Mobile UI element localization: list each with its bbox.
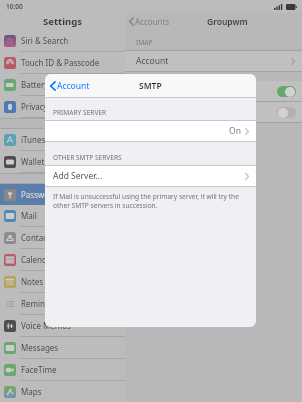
staticText: Battery [21, 79, 49, 90]
staticText: Contacts [21, 232, 54, 243]
button[interactable]: Add Server... [45, 166, 256, 186]
staticText: SMTP [139, 80, 162, 92]
staticText: Passwords [21, 189, 62, 200]
staticText: Messages [21, 342, 59, 353]
staticText: Maps [21, 386, 42, 397]
staticText: Groupwm [207, 16, 248, 28]
staticText: Voice Memos [21, 320, 71, 331]
staticText: Siri & Search [21, 35, 69, 46]
staticText: Touch ID & Passcode [21, 57, 100, 68]
staticText: Account [136, 55, 169, 67]
button[interactable]: Touch ID & Passcode [0, 52, 125, 73]
button[interactable]: iTunes & App Store [0, 129, 125, 150]
button[interactable]: Voice Memos [0, 315, 125, 336]
button[interactable]: Enabled [125, 81, 302, 101]
button[interactable]: Wallet & Apple Pay [0, 151, 125, 172]
staticText: Calendar [21, 254, 55, 265]
button[interactable]: Battery [0, 74, 125, 95]
staticText: Add Server... [53, 170, 103, 182]
staticText: Mail [21, 210, 37, 221]
button[interactable]: Account [45, 77, 96, 95]
button[interactable]: Contacts [0, 227, 125, 248]
staticText: Wallet & Apple Pay [21, 156, 92, 167]
staticText: IMAP [136, 38, 153, 47]
staticText: Notes [21, 276, 44, 287]
staticText: Privacy [21, 101, 48, 112]
button[interactable]: FaceTime [0, 359, 125, 380]
button[interactable]: Notes [0, 271, 125, 292]
button[interactable]: Privacy [0, 96, 125, 117]
staticText: OTHER SMTP SERVERS [53, 153, 122, 162]
staticText: FaceTime [21, 364, 57, 375]
staticText: On [229, 125, 241, 137]
button[interactable]: Calendar [0, 249, 125, 270]
staticText: PRIMARY SERVER [53, 108, 107, 117]
staticText: Accounts [135, 16, 170, 27]
other: Disabled [277, 107, 296, 118]
button[interactable]: On [45, 121, 256, 141]
button[interactable]: Accounts [125, 16, 170, 27]
button[interactable]: Maps [0, 381, 125, 402]
staticText: 10:00 [6, 2, 23, 11]
button[interactable]: Siri & Search [0, 30, 125, 51]
staticText: Reminders [21, 298, 62, 309]
other: Enabled [277, 86, 296, 97]
button[interactable]: Messages [0, 337, 125, 358]
staticText: Settings [43, 15, 82, 28]
button[interactable]: Passwords [0, 184, 125, 205]
button[interactable]: Reminders [0, 293, 125, 314]
button[interactable]: Account [125, 51, 302, 71]
staticText: iTunes & App Store [21, 134, 93, 145]
staticText: Account [57, 80, 90, 92]
button[interactable]: Mail [0, 205, 125, 226]
button[interactable]: Disabled [125, 102, 302, 122]
staticText: If Mail is unsuccessful using the primar… [53, 192, 246, 210]
